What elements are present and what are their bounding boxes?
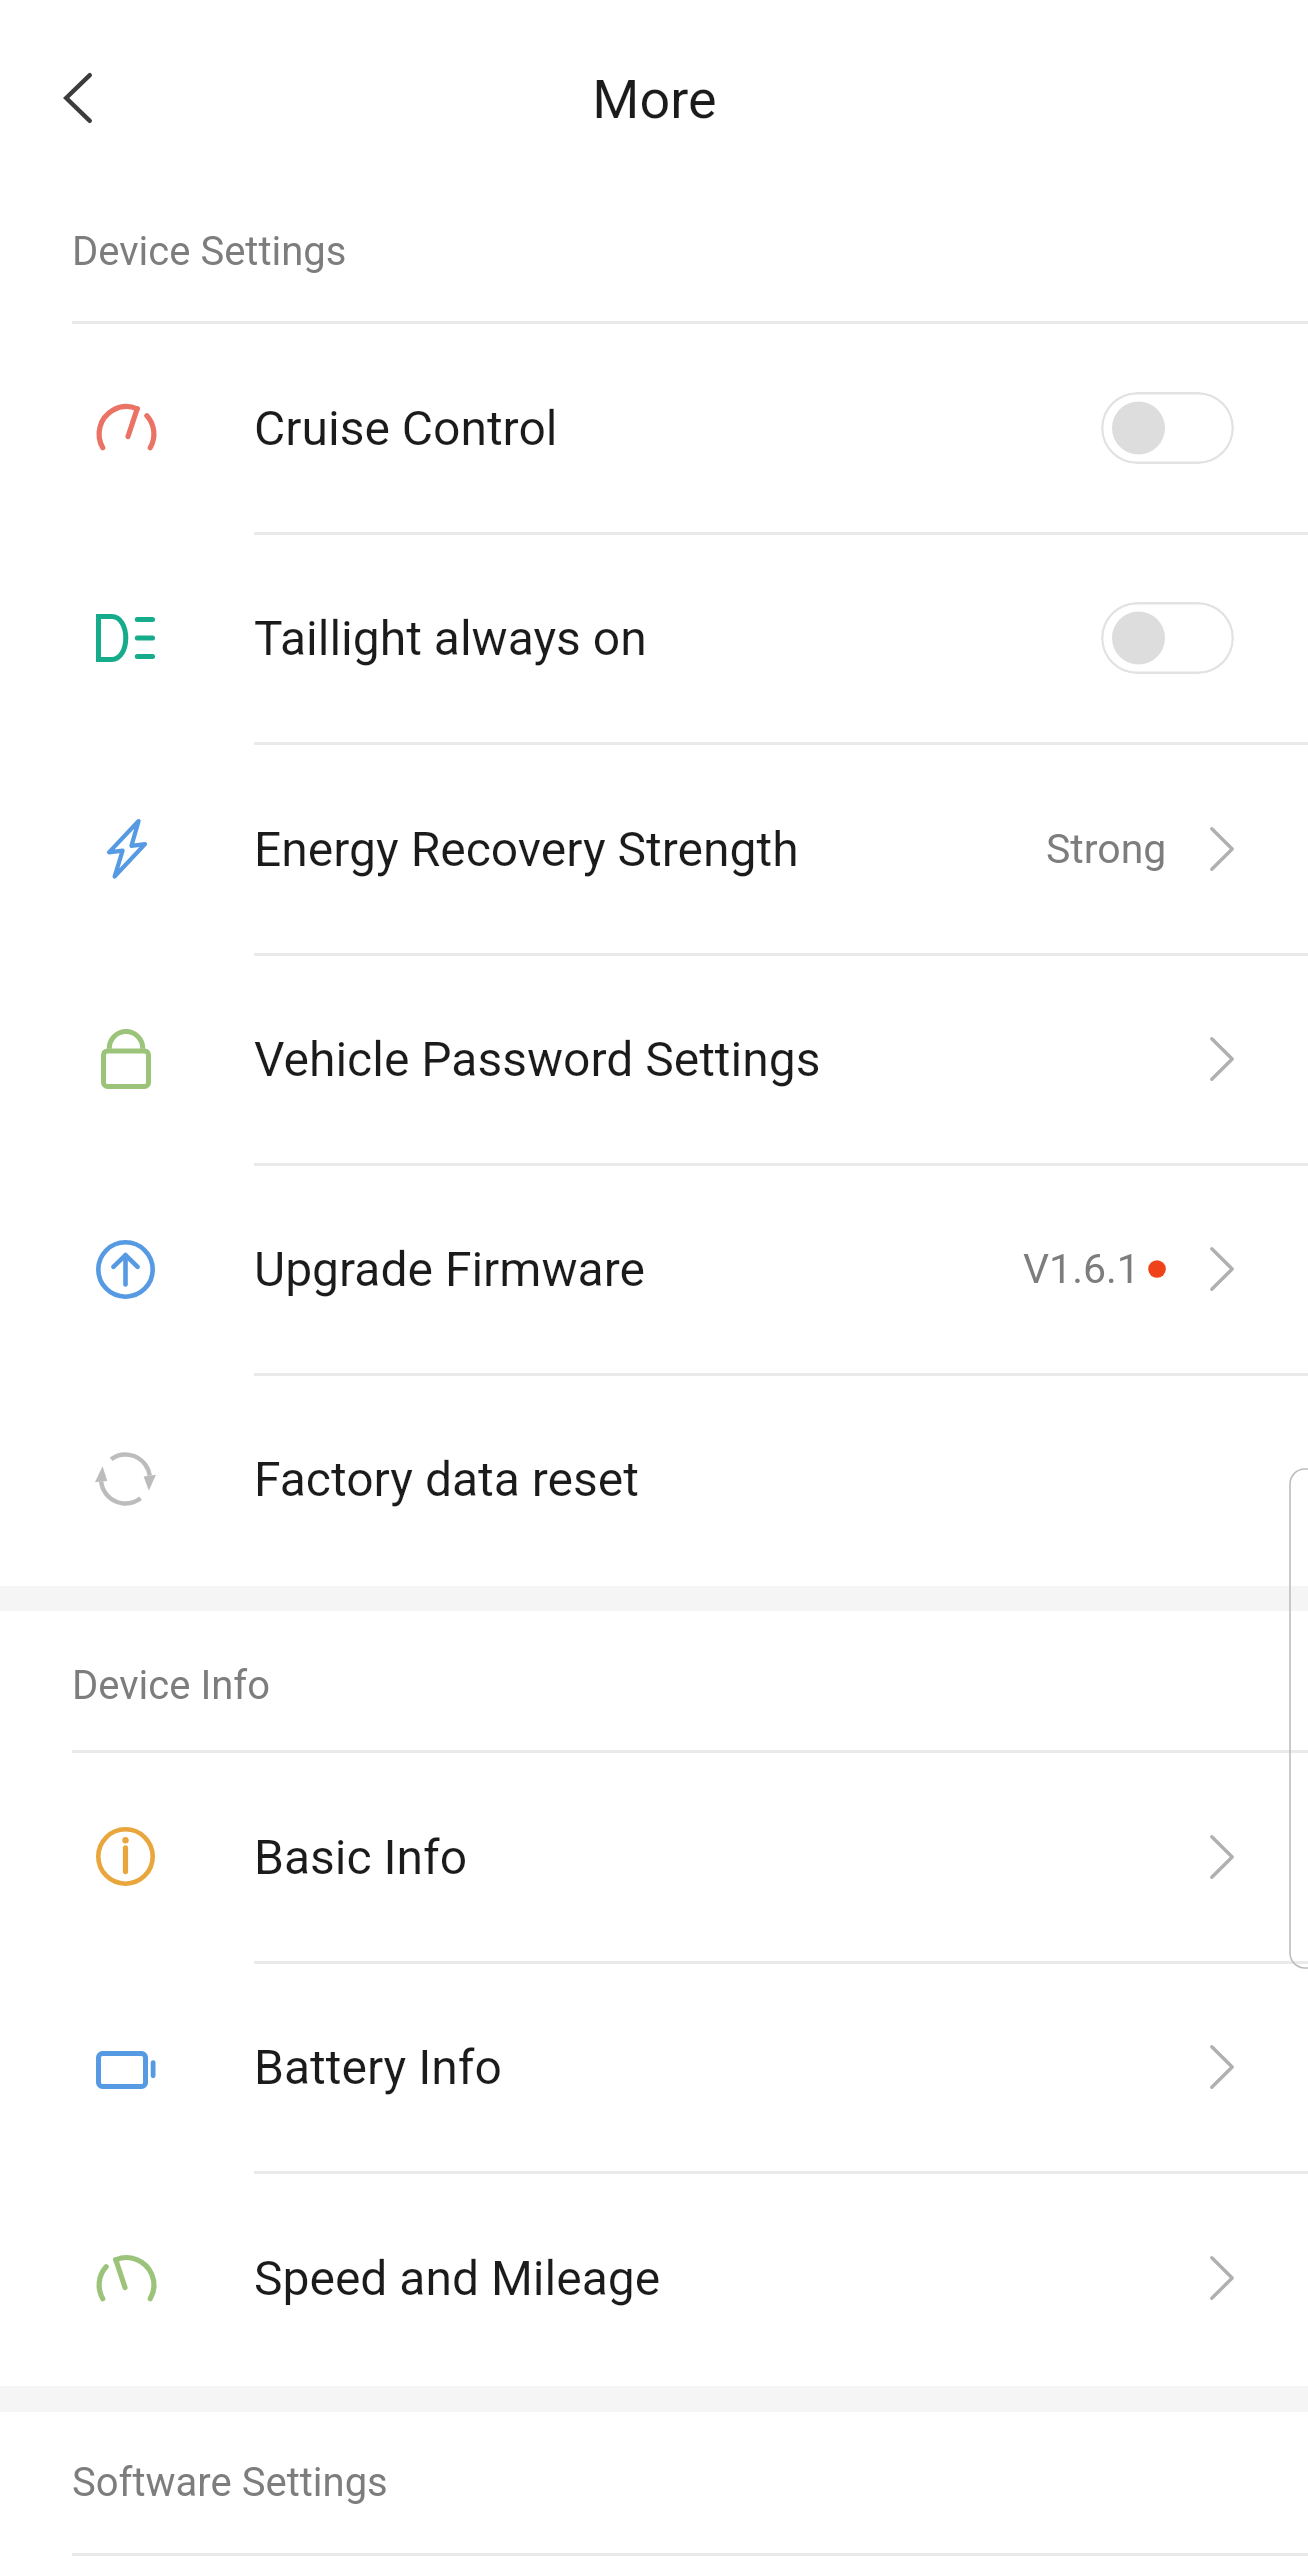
- staticText: Vehicle Password Settings: [254, 1031, 821, 1087]
- staticText: Basic Info: [254, 1829, 468, 1885]
- button[interactable]: Taillight always on, off: [1101, 602, 1234, 674]
- button[interactable]: Factory data reset: [0, 1374, 1308, 1584]
- staticText: Factory data reset: [254, 1451, 639, 1507]
- button[interactable]: Taillight always on: [0, 533, 1308, 743]
- button[interactable]: Energy Recovery Strength: [0, 743, 1308, 954]
- button[interactable]: Cruise Control: [0, 322, 1308, 533]
- staticText: Software Settings: [72, 2459, 388, 2506]
- button[interactable]: Back: [50, 70, 106, 126]
- staticText: Upgrade Firmware: [254, 1241, 645, 1297]
- button[interactable]: Upgrade Firmware: [0, 1164, 1308, 1374]
- staticText: Taillight always on: [254, 610, 647, 666]
- staticText: Device Info: [72, 1662, 271, 1709]
- button[interactable]: Cruise Control, off: [1101, 392, 1234, 464]
- staticText: Battery Info: [254, 2039, 502, 2095]
- staticText: Energy Recovery Strength: [254, 821, 799, 877]
- button[interactable]: Battery Info: [0, 1962, 1308, 2172]
- button[interactable]: Basic Info: [0, 1751, 1308, 1962]
- staticText: More: [592, 68, 717, 131]
- button[interactable]: Vehicle Password Settings: [0, 954, 1308, 1164]
- staticText: Cruise Control: [254, 400, 558, 456]
- button[interactable]: Speed and Mileage: [0, 2172, 1308, 2384]
- staticText: Device Settings: [72, 228, 347, 275]
- staticText: V1.6.1: [1023, 1245, 1140, 1293]
- staticText: Strong: [1046, 825, 1167, 873]
- staticText: Speed and Mileage: [254, 2250, 661, 2306]
